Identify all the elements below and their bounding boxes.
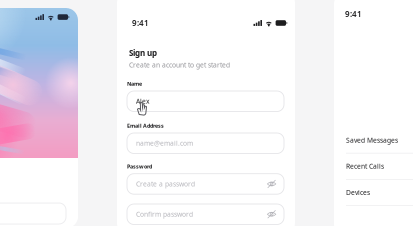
staticText: Saved Messages	[346, 136, 398, 145]
staticText: Recent Calls	[346, 162, 384, 171]
staticText: Confirm password	[136, 210, 193, 219]
staticText: Password	[127, 163, 152, 170]
button[interactable]: Alex	[127, 91, 284, 111]
staticText: 9:41	[132, 18, 149, 28]
button[interactable]: name@email.com	[127, 133, 284, 153]
staticText: Devices	[346, 188, 370, 197]
staticText: Create a password	[136, 179, 195, 188]
staticText: Alex	[136, 97, 150, 106]
button[interactable]: Recent Calls	[334, 153, 413, 180]
staticText: Sign up	[129, 48, 157, 58]
button[interactable]: Saved Messages	[334, 127, 413, 153]
staticText: Name	[127, 80, 142, 87]
staticText: name@email.com	[136, 139, 193, 148]
staticText: Create an account to get started	[129, 61, 230, 69]
button[interactable]: Confirm password	[127, 204, 284, 224]
staticText: 9:41	[345, 9, 362, 19]
staticText: Email Address	[127, 122, 164, 129]
button[interactable]: Create a password	[127, 174, 284, 194]
button[interactable]: Devices	[334, 180, 413, 206]
